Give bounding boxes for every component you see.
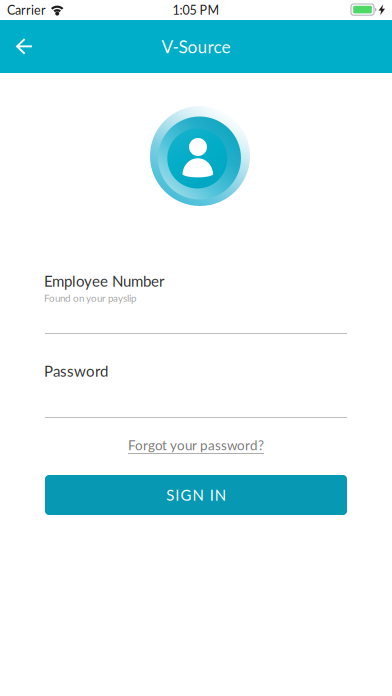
staticText: Employee Number: [44, 272, 164, 290]
button[interactable]: Forgot your password?: [45, 434, 347, 456]
staticText: SIGN IN: [166, 486, 226, 504]
button[interactable]: Back: [1, 23, 47, 69]
button[interactable]: SIGN IN: [45, 475, 347, 515]
staticText: 1:05 PM: [172, 2, 219, 17]
staticText: Carrier: [7, 2, 46, 17]
staticText: Forgot your password?: [128, 437, 264, 453]
staticText: Found on your payslip: [44, 292, 136, 304]
staticText: V-Source: [161, 36, 230, 57]
staticText: Password: [44, 362, 108, 380]
